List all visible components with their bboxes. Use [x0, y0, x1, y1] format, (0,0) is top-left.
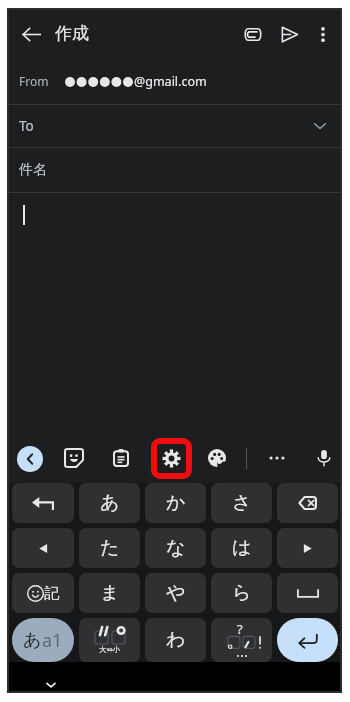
staticText: ? — [237, 620, 243, 638]
button[interactable]: ? — [211, 618, 272, 662]
button[interactable]: Hide keyboard — [37, 671, 64, 698]
staticText: さ — [232, 491, 252, 515]
button[interactable]: Theme — [205, 446, 229, 470]
button[interactable]: Clipboard — [109, 446, 133, 470]
button[interactable] — [277, 573, 338, 613]
staticText: a1 — [42, 628, 63, 653]
button[interactable] — [277, 618, 338, 662]
button[interactable]: Back — [11, 14, 51, 54]
staticText: や — [166, 581, 186, 605]
staticText: From — [19, 73, 49, 89]
button[interactable]: な — [145, 528, 206, 568]
button[interactable]: Previous — [17, 446, 43, 472]
staticText: な — [166, 536, 186, 560]
button[interactable] — [277, 528, 338, 568]
button[interactable]: 大⇔小 — [79, 618, 140, 662]
button[interactable]: More options — [303, 14, 343, 54]
staticText: 記 — [44, 584, 59, 603]
button[interactable]: や — [145, 573, 206, 613]
staticText: ら — [232, 581, 252, 605]
button[interactable]: た — [79, 528, 140, 568]
button[interactable]: Stickers — [62, 446, 86, 470]
staticText: あ — [23, 629, 42, 652]
button[interactable] — [277, 483, 338, 523]
staticText: 大⇔小 — [99, 645, 121, 654]
button[interactable]: は — [211, 528, 272, 568]
button[interactable]: わ — [145, 618, 206, 662]
button[interactable]: Send — [269, 14, 309, 54]
staticText: ま — [100, 581, 120, 605]
staticText: あ — [100, 491, 120, 515]
staticText: 件名 — [19, 161, 47, 179]
button[interactable]: ま — [79, 573, 140, 613]
button[interactable] — [12, 528, 74, 568]
button[interactable]: From — [9, 58, 340, 104]
staticText: か — [166, 491, 186, 515]
button[interactable]: Settings — [151, 438, 192, 479]
staticText: わ — [166, 628, 186, 652]
staticText: To — [19, 117, 34, 135]
button[interactable]: 件名 — [9, 148, 340, 192]
button[interactable]: さ — [211, 483, 272, 523]
button[interactable]: か — [145, 483, 206, 523]
staticText: @gmail.com — [134, 73, 207, 90]
button[interactable]: More options — [265, 446, 289, 470]
button[interactable]: あ — [12, 618, 74, 662]
button[interactable]: あ — [79, 483, 140, 523]
staticText: は — [232, 536, 252, 560]
staticText: 作成 — [55, 23, 89, 44]
button[interactable]: Voice input — [312, 446, 336, 470]
button[interactable]: ら — [211, 573, 272, 613]
button[interactable]: Attach file — [233, 14, 273, 54]
button[interactable] — [12, 483, 74, 523]
button[interactable]: To — [9, 105, 340, 147]
button[interactable]: 記 — [12, 573, 74, 613]
staticText: た — [100, 536, 120, 560]
